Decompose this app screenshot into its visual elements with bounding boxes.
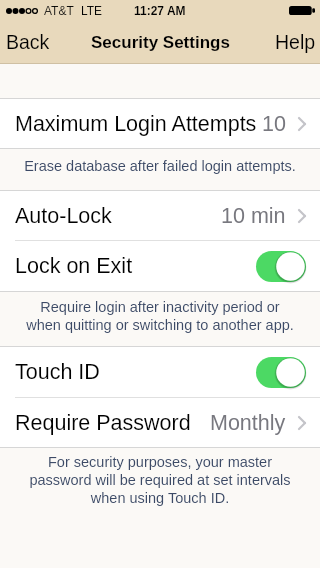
staticText: Require login after inactivity period or… — [14, 299, 306, 333]
staticText: Monthly — [210, 411, 286, 435]
button[interactable]: Toggle Touch ID — [256, 357, 306, 388]
staticText: For security purposes, your master passw… — [14, 454, 306, 506]
staticText: LTE — [81, 4, 103, 17]
button[interactable]: Toggle Lock on Exit — [256, 251, 306, 282]
button[interactable]: Maximum Login Attempts — [0, 99, 320, 148]
button[interactable]: Back — [0, 20, 60, 64]
button[interactable]: Require Password — [0, 398, 320, 447]
staticText: Maximum Login Attempts — [15, 112, 257, 136]
staticText: Back — [6, 31, 50, 53]
button[interactable]: Auto-Lock — [0, 191, 320, 240]
staticText: Help — [275, 31, 316, 53]
staticText: Security Settings — [91, 33, 230, 52]
staticText: Require Password — [15, 411, 191, 435]
staticText: Erase database after failed login attemp… — [14, 158, 306, 174]
staticText: 11:27 AM — [134, 4, 186, 17]
button[interactable]: Touch ID — [0, 347, 320, 397]
staticText: Auto-Lock — [15, 204, 112, 228]
staticText: Touch ID — [15, 360, 100, 384]
button[interactable]: Lock on Exit — [0, 241, 320, 291]
staticText: AT&T — [44, 4, 74, 17]
staticText: Lock on Exit — [15, 254, 133, 278]
button[interactable]: Help — [265, 20, 320, 64]
staticText: 10 min — [221, 204, 286, 228]
staticText: 10 — [262, 112, 286, 136]
